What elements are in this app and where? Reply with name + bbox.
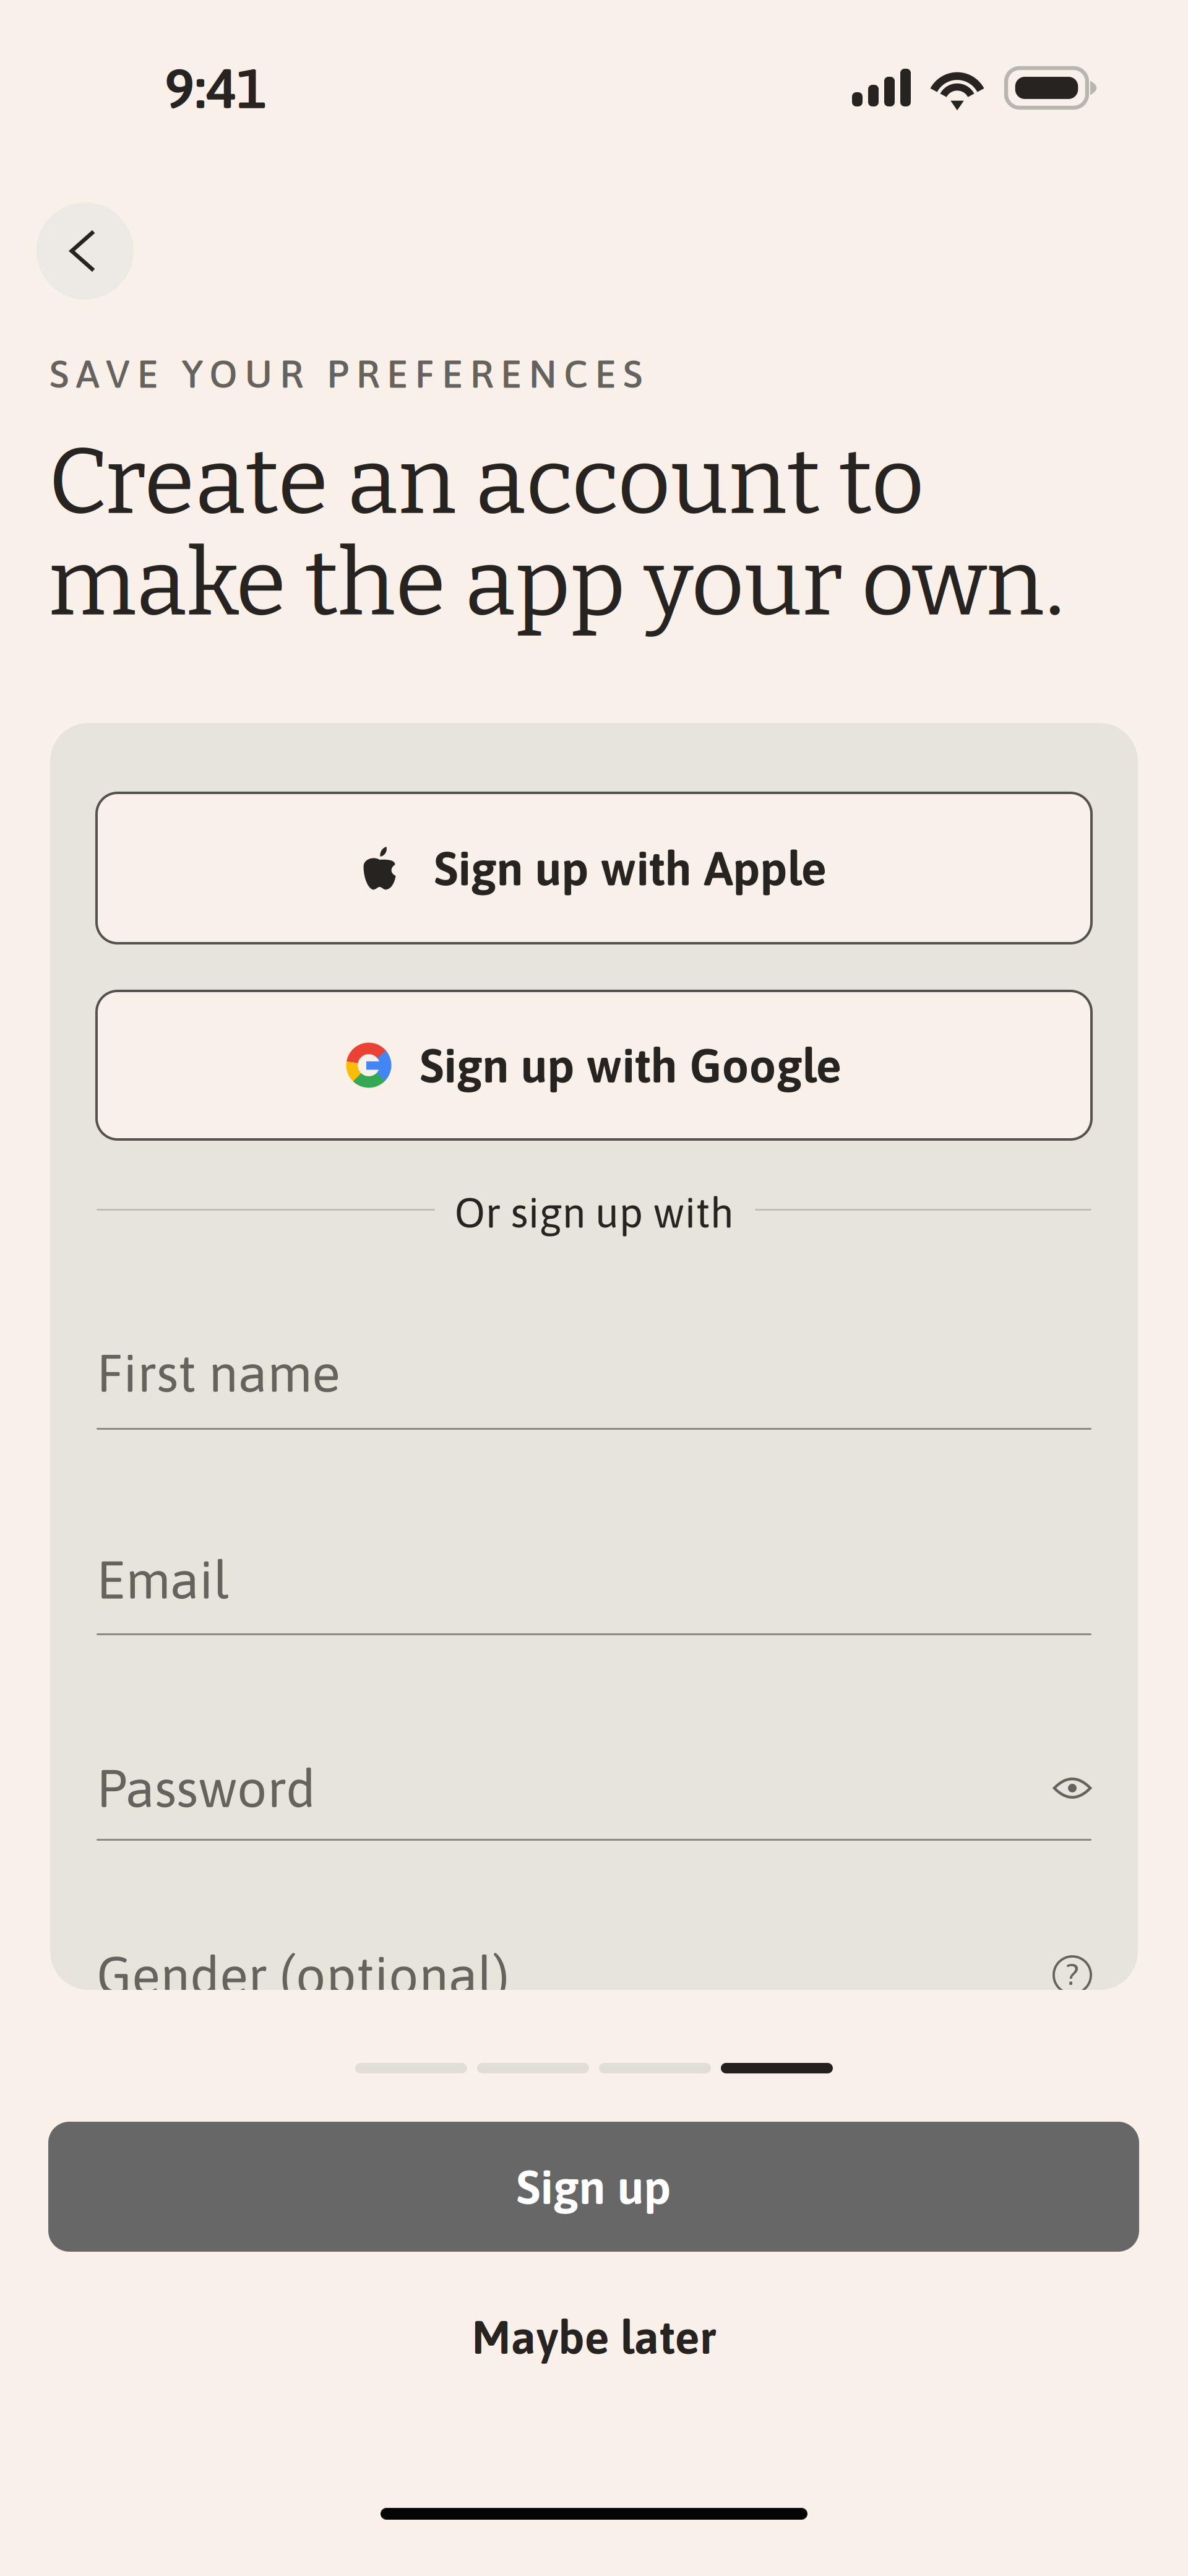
staticText: Sign up with Google <box>420 1038 842 1093</box>
staticText: Email <box>97 1549 229 1610</box>
staticText: make the app your own. <box>48 528 1065 639</box>
staticText: Or sign up with <box>454 1188 734 1237</box>
staticText: First name <box>97 1343 340 1403</box>
staticText: Gender (optional) <box>97 1945 509 2005</box>
button[interactable]: Maybe later <box>0 2300 1188 2374</box>
staticText: ? <box>1066 1957 1079 1991</box>
staticText: Sign up <box>516 2159 671 2214</box>
button[interactable]: Sign up with Google <box>97 991 1091 1139</box>
button[interactable]: Show password <box>1053 1769 1091 1807</box>
button[interactable]: Back <box>37 202 134 300</box>
button[interactable]: About gender field <box>1053 1956 1091 1994</box>
staticText: SAVE YOUR PREFERENCES <box>49 352 642 396</box>
staticText: 9:41 <box>165 56 267 120</box>
staticText: Maybe later <box>472 2311 716 2364</box>
staticText: Create an account to <box>48 426 924 537</box>
button[interactable]: Sign up <box>48 2122 1139 2252</box>
staticText: Sign up with Apple <box>434 841 827 895</box>
staticText: Password <box>97 1758 316 1818</box>
button[interactable]: Sign up with Apple <box>97 793 1091 943</box>
